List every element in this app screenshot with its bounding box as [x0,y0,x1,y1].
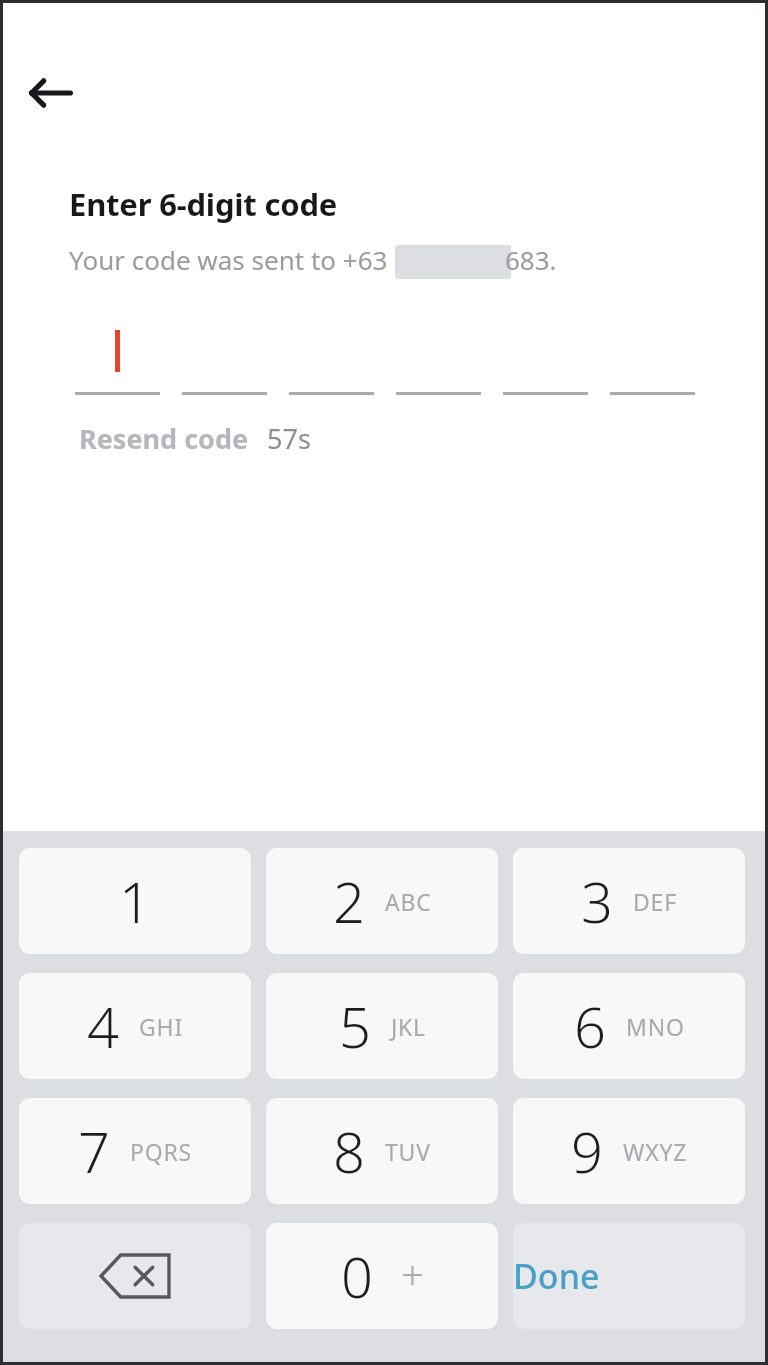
button[interactable]: 1 [19,848,251,954]
button[interactable]: Digit 6 [610,312,695,397]
staticText: 4 [87,988,119,1064]
staticText: JKL [391,1011,426,1042]
staticText: Enter 6-digit code [69,183,338,225]
staticText: MNO [626,1011,685,1042]
staticText: TUV [385,1136,431,1167]
staticText: PQRS [130,1136,193,1167]
button[interactable]: 5 [266,973,498,1079]
staticText: 8 [333,1113,365,1189]
staticText: 2 [333,863,365,939]
staticText: DEF [633,886,677,917]
button[interactable]: Digit 3 [289,312,374,397]
staticText: ABC [385,886,432,917]
button[interactable]: Backspace [19,1223,251,1329]
button[interactable]: 9 [513,1098,745,1204]
staticText: Done [513,1253,745,1299]
button[interactable]: Digit 2 [182,312,267,397]
staticText: 5 [339,988,371,1064]
button[interactable]: 7 [19,1098,251,1204]
staticText: WXYZ [623,1136,688,1167]
staticText: 683. [505,242,557,277]
staticText: 9 [571,1113,603,1189]
button[interactable]: 3 [513,848,745,954]
staticText: Resend code [79,420,249,457]
staticText: 6 [574,988,606,1064]
staticText: + [401,1247,424,1301]
button[interactable]: 6 [513,973,745,1079]
staticText: Your code was sent to +63 [69,242,395,277]
button[interactable]: 0 plus [266,1223,498,1329]
staticText: 7 [78,1113,110,1189]
button[interactable]: Resend code [79,420,249,457]
staticText: 57s [267,420,311,457]
button[interactable]: Digit 5 [503,312,588,397]
button[interactable]: 2 [266,848,498,954]
staticText: GHI [139,1011,183,1042]
staticText: 3 [581,863,613,939]
button[interactable]: Digit 4 [396,312,481,397]
button[interactable]: Back [24,64,82,122]
staticText: 1 [119,863,151,939]
staticText: 0 [341,1238,373,1314]
button[interactable]: 8 [266,1098,498,1204]
button[interactable]: 4 [19,973,251,1079]
button[interactable]: Done [513,1223,745,1329]
button[interactable]: Digit 1 [75,312,160,397]
